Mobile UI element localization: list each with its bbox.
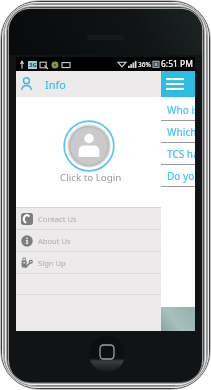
button[interactable]: Open navigation menu bbox=[161, 71, 195, 97]
staticText: Sign Up bbox=[38, 258, 66, 268]
staticText: 3G bbox=[29, 61, 37, 69]
button[interactable] bbox=[62, 120, 116, 174]
staticText: Do you hav bbox=[167, 169, 195, 183]
button[interactable]: Sign Up bbox=[16, 252, 161, 273]
staticText: 36% bbox=[138, 60, 151, 69]
button[interactable]: Which mod bbox=[161, 121, 195, 142]
staticText: Which mod bbox=[167, 125, 195, 139]
staticText: TCS have bbox=[167, 147, 195, 161]
button[interactable]: Info bbox=[16, 71, 161, 97]
staticText: About Us bbox=[38, 236, 71, 246]
button[interactable]: Home bbox=[89, 336, 125, 372]
button[interactable]: TCS have bbox=[161, 143, 195, 164]
button[interactable]: Who is the bbox=[161, 99, 195, 120]
staticText: 6:51 PM bbox=[161, 58, 193, 70]
button[interactable]: About Us bbox=[16, 230, 161, 251]
staticText: Info bbox=[45, 77, 66, 92]
staticText: Click to Login bbox=[60, 171, 122, 184]
button[interactable]: Contact Us bbox=[16, 208, 161, 229]
staticText: Who is the bbox=[167, 103, 195, 117]
staticText: Contact Us bbox=[38, 214, 77, 224]
button[interactable]: Do you hav bbox=[161, 165, 195, 186]
